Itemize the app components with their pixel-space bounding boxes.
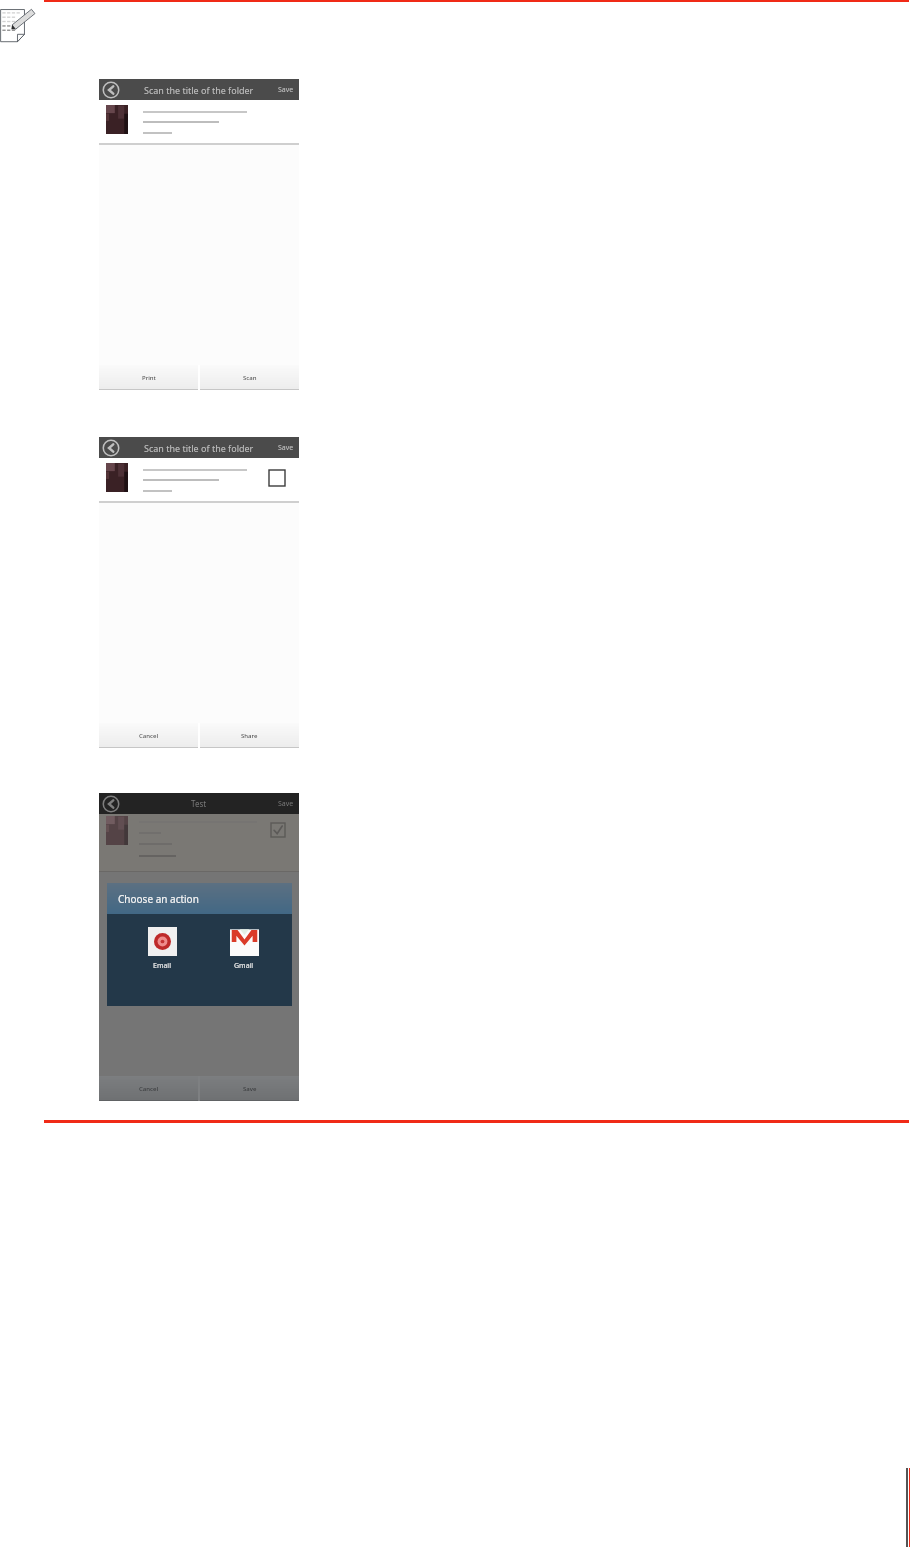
button[interactable]: Share — [200, 723, 299, 748]
staticText: Email — [153, 961, 171, 971]
button[interactable]: Print — [99, 365, 198, 390]
button[interactable]: Email — [139, 927, 185, 971]
staticText: Scan the title of the folder — [144, 442, 254, 454]
staticText: Cancel — [139, 1085, 159, 1093]
staticText: Test — [191, 798, 207, 809]
button[interactable]: Save — [273, 79, 299, 100]
staticText: Gmail — [234, 961, 254, 971]
button[interactable]: Select item — [269, 470, 285, 486]
staticText: Save — [278, 443, 294, 453]
staticText: Save — [278, 799, 294, 809]
staticText: Choose an action — [118, 892, 199, 906]
button[interactable]: Select item — [99, 458, 299, 503]
button[interactable]: Save — [273, 437, 299, 458]
staticText: Share — [241, 732, 258, 740]
button[interactable]: Scan — [200, 365, 299, 390]
button[interactable]: Select item — [99, 814, 299, 872]
button[interactable]: Save — [273, 793, 299, 814]
button[interactable]: Cancel — [99, 1076, 198, 1101]
button[interactable]: Back — [101, 794, 121, 814]
button[interactable]: Cancel — [99, 723, 198, 748]
button[interactable]: Back — [101, 438, 121, 458]
staticText: Save — [278, 85, 294, 95]
button[interactable] — [99, 100, 299, 145]
staticText: Save — [243, 1085, 257, 1093]
button[interactable]: Back — [101, 80, 121, 100]
button[interactable]: Gmail — [221, 927, 267, 971]
staticText: Scan the title of the folder — [144, 84, 254, 96]
button[interactable]: Save — [200, 1076, 299, 1101]
button[interactable]: Select item — [271, 823, 285, 837]
staticText: Scan — [243, 374, 257, 382]
staticText: Print — [142, 374, 156, 382]
staticText: Cancel — [139, 732, 159, 740]
